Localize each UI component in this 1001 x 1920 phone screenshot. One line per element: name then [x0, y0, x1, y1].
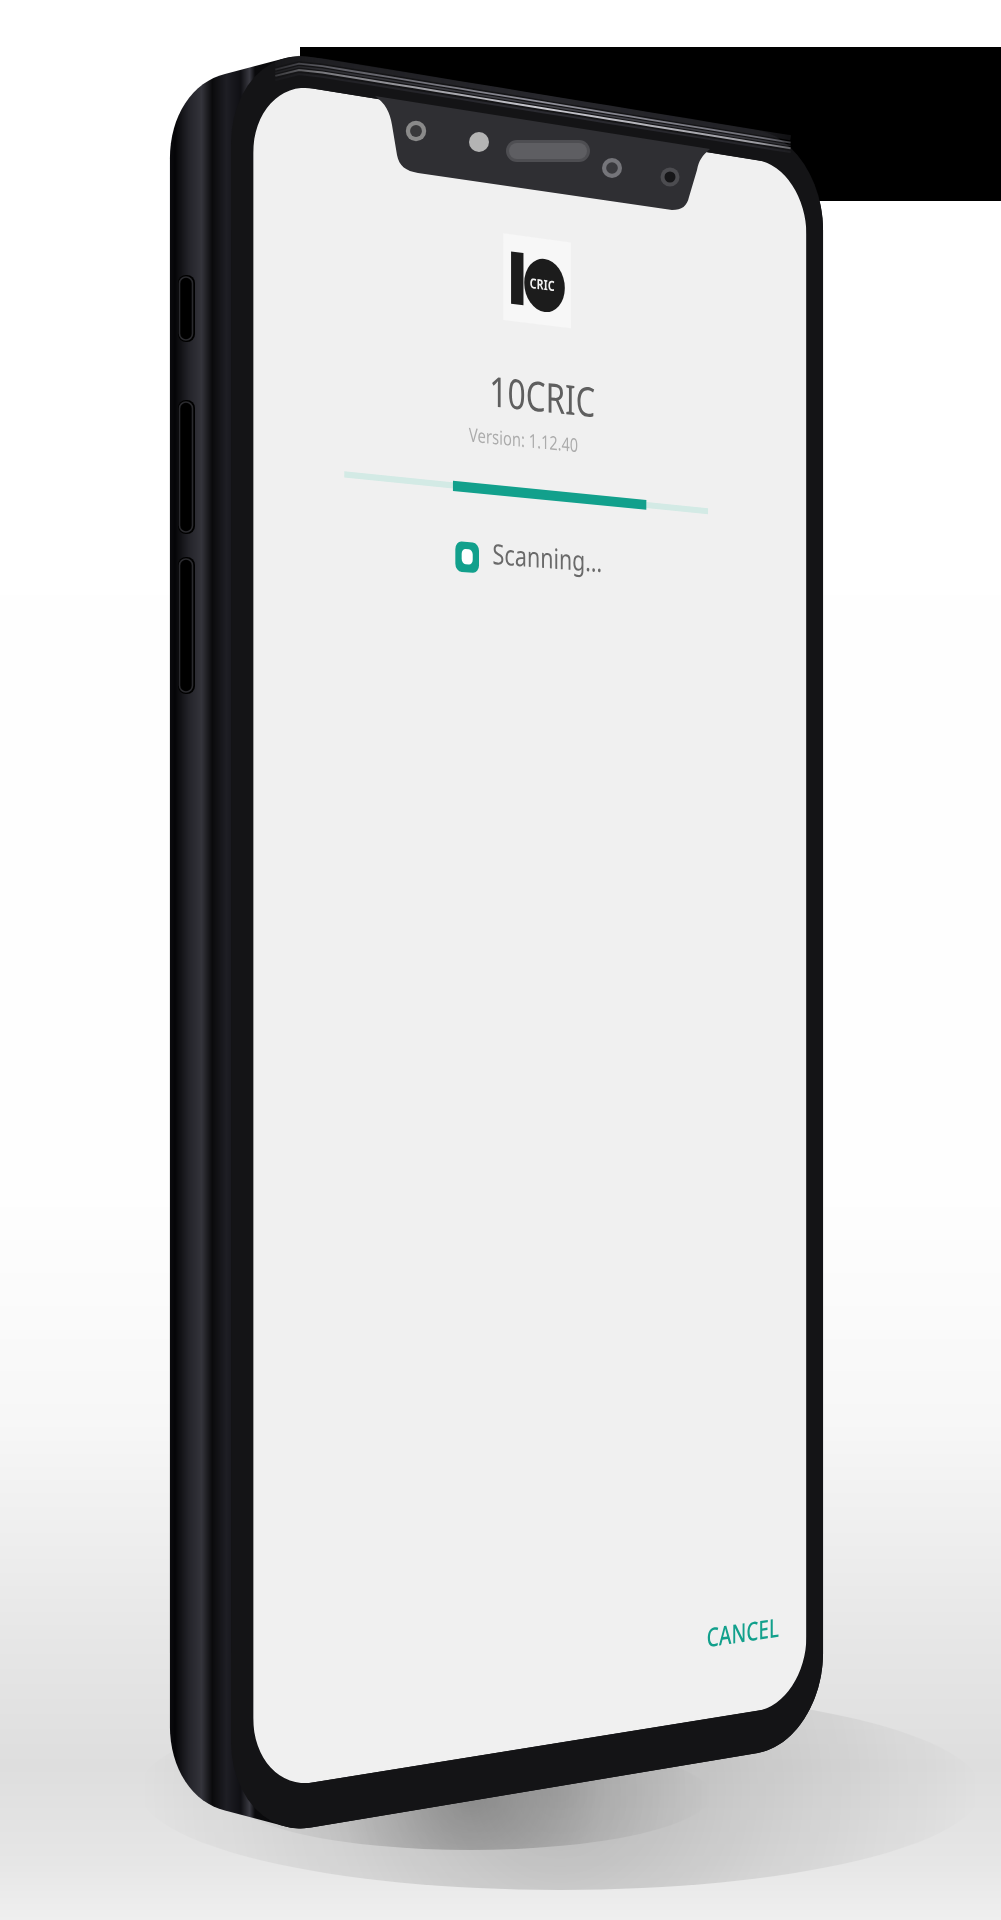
staticText: Scanning...: [492, 534, 603, 580]
staticText: 10CRIC: [489, 362, 596, 429]
button[interactable]: CANCEL: [707, 1609, 779, 1655]
staticText: Version: 1.12.40: [469, 421, 578, 458]
staticText: CRIC: [530, 273, 555, 295]
staticText: CANCEL: [707, 1609, 779, 1655]
